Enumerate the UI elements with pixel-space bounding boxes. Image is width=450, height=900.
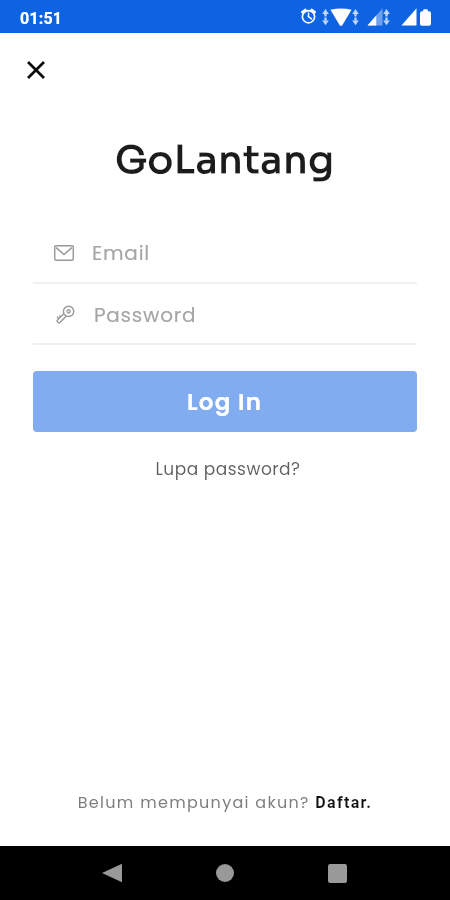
staticText: Email xyxy=(92,239,150,267)
button[interactable]: Home xyxy=(203,851,247,895)
button[interactable]: Belum mempunyai akun? Daftar. xyxy=(0,791,450,813)
staticText: 01:51 xyxy=(20,9,63,28)
staticText: GoLantang xyxy=(0,136,450,184)
button[interactable]: Password xyxy=(33,293,417,337)
button[interactable]: Lupa password? xyxy=(3,457,450,481)
button[interactable]: Recent apps xyxy=(315,851,359,895)
button[interactable]: Close xyxy=(18,52,54,88)
staticText: Password xyxy=(94,301,197,329)
button[interactable]: Email xyxy=(33,231,417,275)
staticText: Log In xyxy=(187,386,263,418)
button[interactable]: Back xyxy=(90,851,134,895)
button[interactable]: Log In xyxy=(33,371,417,432)
